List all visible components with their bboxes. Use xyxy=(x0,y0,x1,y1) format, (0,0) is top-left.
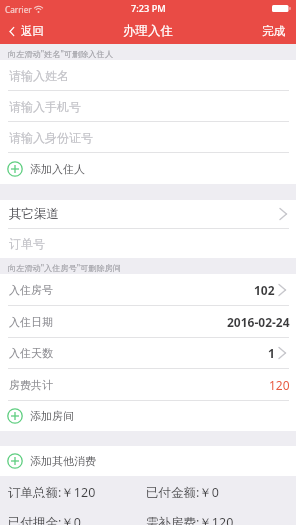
button[interactable]: 添加房间 xyxy=(0,401,296,431)
button[interactable]: 添加入住人 xyxy=(0,153,296,184)
staticText: 添加入住人 xyxy=(30,162,85,176)
button[interactable]: 添加其他消费 xyxy=(0,446,296,476)
staticText: 已付押金:￥0 xyxy=(8,514,82,525)
staticText: 添加其他消费 xyxy=(30,454,96,468)
staticText: 入住房号 xyxy=(9,283,53,297)
staticText: 102 xyxy=(254,282,275,298)
staticText: 向左滑动"入住房号"可删除房间 xyxy=(8,262,122,273)
staticText: 2016-02-24 xyxy=(227,314,290,330)
staticText: 入住日期 xyxy=(9,315,53,329)
staticText: 入住天数 xyxy=(9,346,53,360)
staticText: 已付金额:￥0 xyxy=(146,484,220,498)
staticText: 添加房间 xyxy=(30,409,74,423)
staticText: 向左滑动"姓名"可删除入住人 xyxy=(8,48,113,59)
staticText: 完成 xyxy=(262,24,285,38)
staticText: 120 xyxy=(269,377,290,393)
button[interactable]: 其它渠道 xyxy=(0,200,296,228)
staticText: Carrier xyxy=(5,4,32,15)
staticText: 返回 xyxy=(21,24,44,38)
button[interactable]: 请输入身份证号 xyxy=(0,122,296,152)
staticText: 请输入身份证号 xyxy=(9,130,93,145)
button[interactable]: 完成 xyxy=(254,20,296,42)
staticText: 请输入姓名 xyxy=(9,68,69,83)
staticText: 办理入住 xyxy=(123,23,173,39)
staticText: 7:23 PM xyxy=(131,2,166,15)
button[interactable]: 订单号 xyxy=(0,229,296,258)
staticText: 其它渠道 xyxy=(9,206,59,222)
staticText: 订单总额:￥120 xyxy=(8,484,96,498)
button[interactable]: 请输入姓名 xyxy=(0,60,296,90)
staticText: 1 xyxy=(268,345,275,361)
button[interactable]: 入住天数 xyxy=(0,338,296,368)
button[interactable]: 请输入手机号 xyxy=(0,91,296,121)
staticText: 请输入手机号 xyxy=(9,99,81,114)
staticText: 需补房费:￥120 xyxy=(146,514,234,525)
button[interactable]: 入住房号 xyxy=(0,274,296,305)
staticText: 订单号 xyxy=(9,236,45,251)
staticText: 房费共计 xyxy=(9,378,53,392)
button[interactable]: 房费共计 xyxy=(0,369,296,400)
button[interactable]: 入住日期 xyxy=(0,306,296,337)
button[interactable]: 返回 xyxy=(0,20,50,42)
